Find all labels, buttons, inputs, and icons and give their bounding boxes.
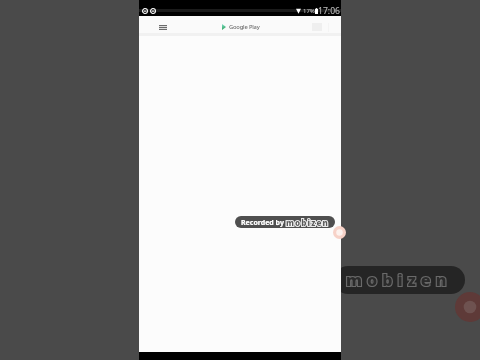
staticText: 17:06 [318,5,340,16]
staticText: 17% [303,7,315,15]
staticText: Google Play [229,23,260,31]
button[interactable]: Mobizen recorder [333,226,346,239]
button[interactable]: Open navigation drawer [156,19,170,35]
staticText: Recorded by [241,218,284,228]
staticText: mobizen [286,217,329,228]
staticText: mobizen [346,269,452,291]
staticText: mobizen [286,217,329,228]
button[interactable]: Search [312,22,335,32]
staticText: mobizen [346,269,452,291]
